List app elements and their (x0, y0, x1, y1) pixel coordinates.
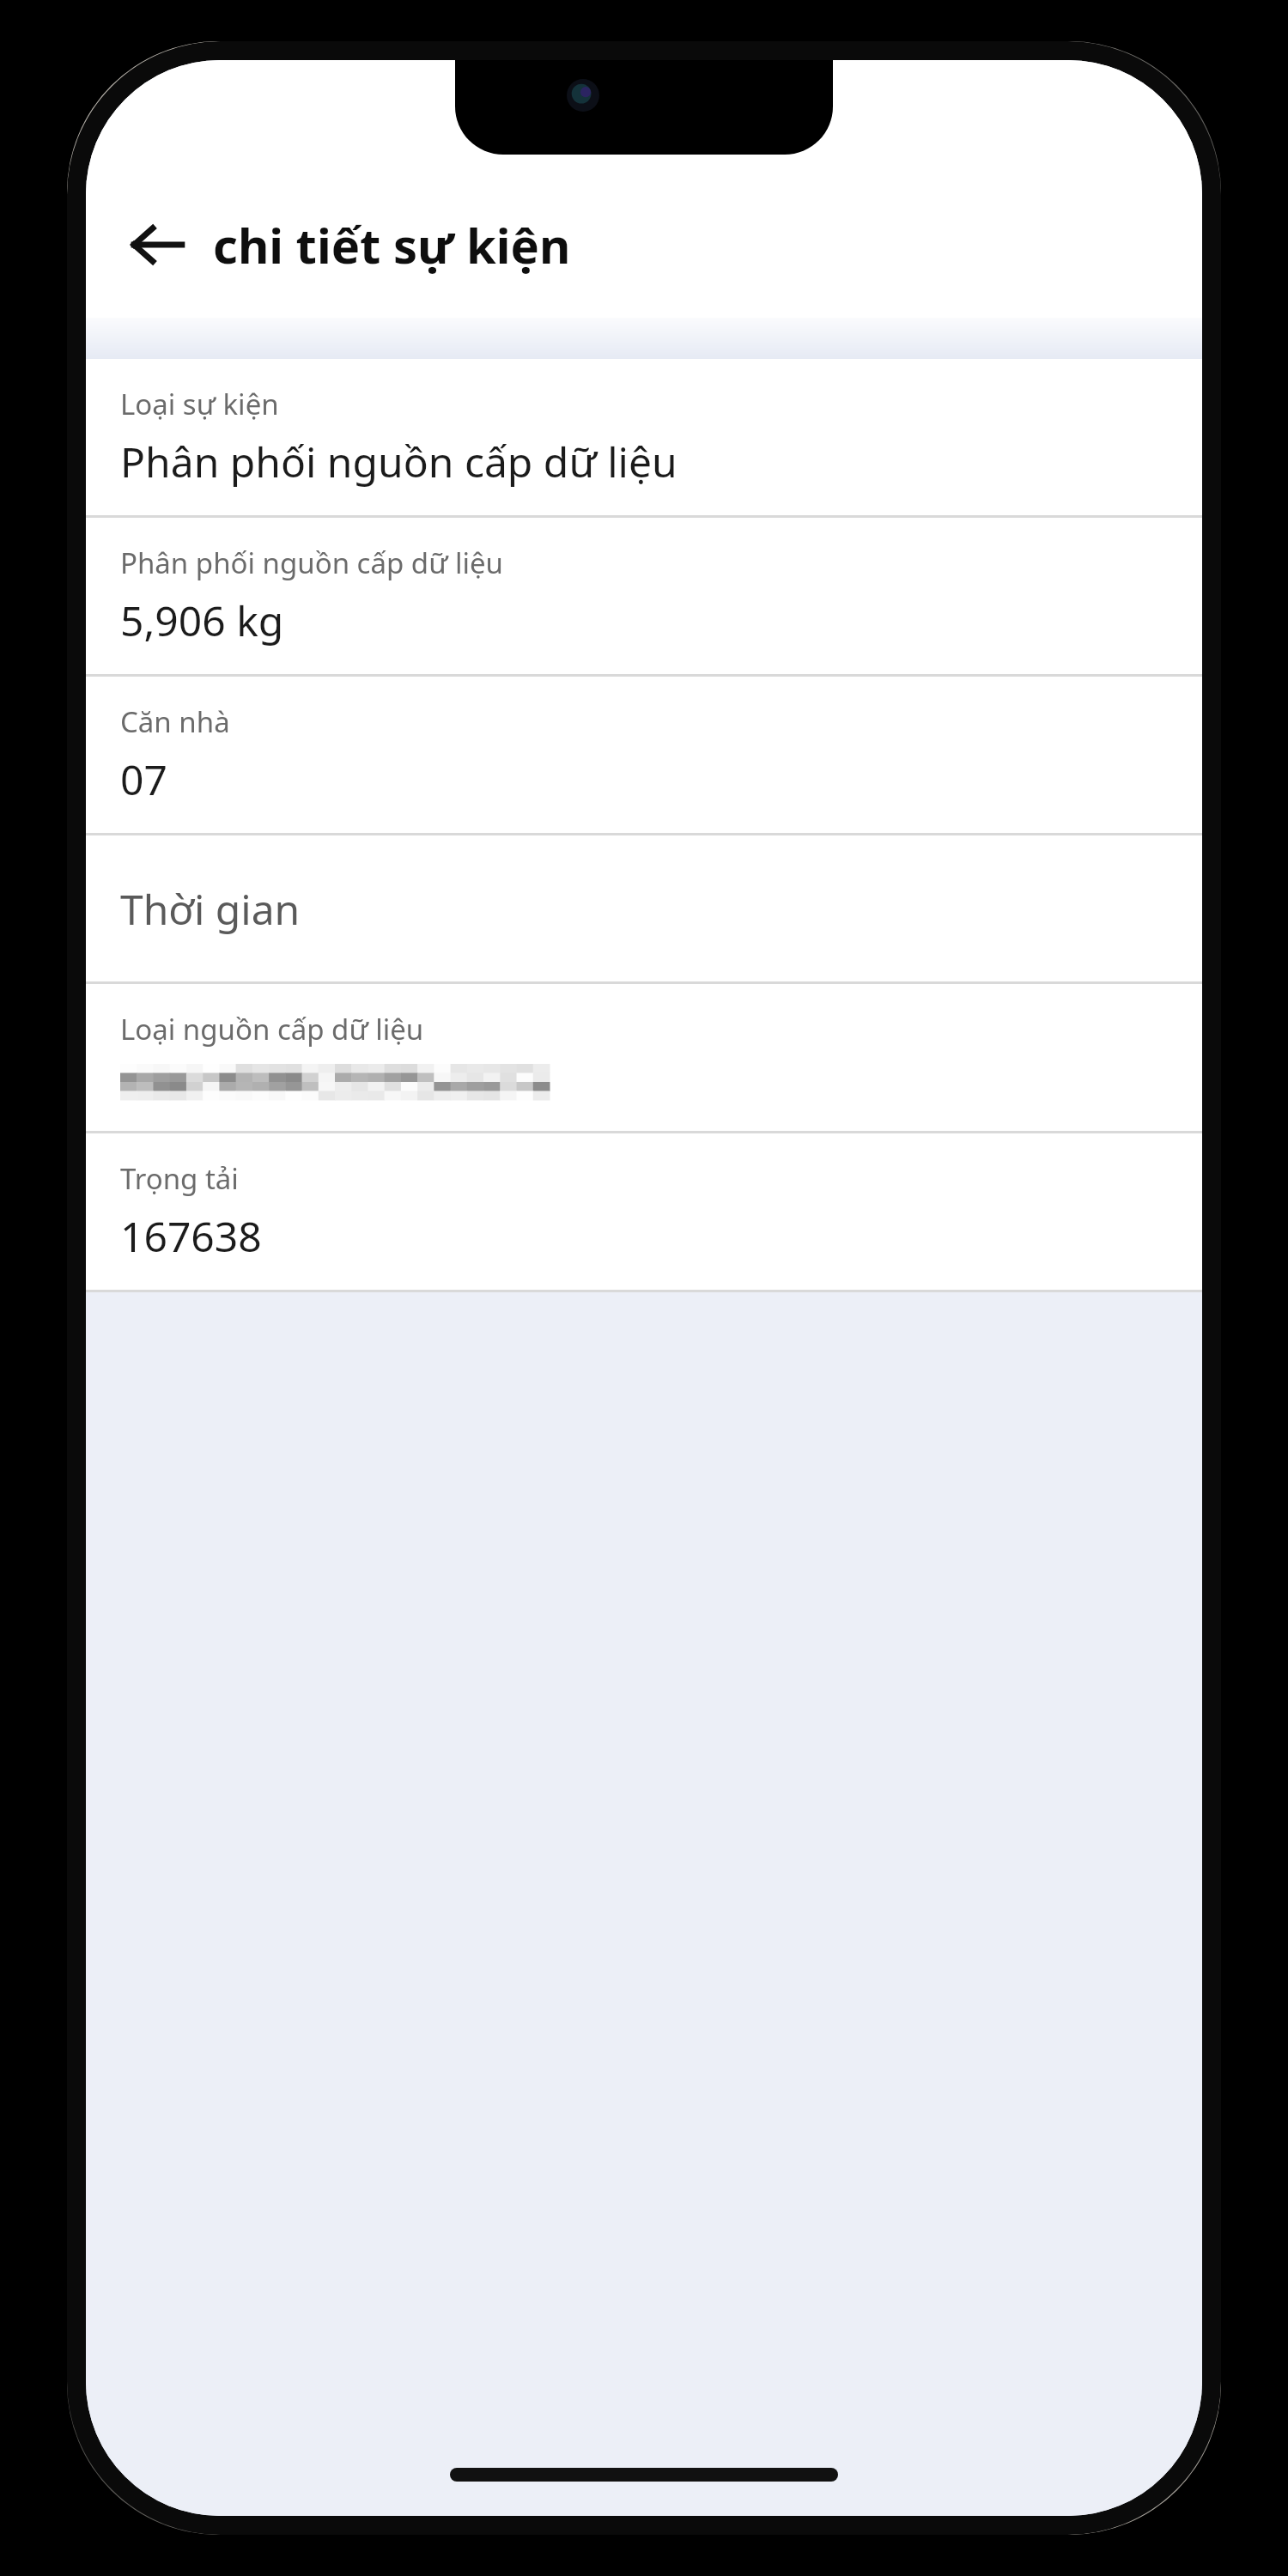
staticText: 167638 (120, 1208, 262, 1264)
staticText: Căn nhà (120, 702, 230, 741)
staticText: Trọng tải (120, 1159, 239, 1198)
staticText: Thời gian (120, 881, 301, 937)
staticText: Loại nguồn cấp dữ liệu (120, 1010, 424, 1048)
button[interactable]: Căn nhà (86, 677, 1202, 833)
staticText: Loại sự kiện (120, 385, 279, 423)
button[interactable]: Trọng tải (86, 1133, 1202, 1290)
button[interactable]: Back (110, 197, 204, 292)
button[interactable]: Phân phối nguồn cấp dữ liệu (86, 518, 1202, 674)
staticText: chi tiết sự kiện (213, 212, 571, 277)
staticText: Phân phối nguồn cấp dữ liệu (120, 434, 677, 489)
staticText: 5,906 kg (120, 592, 284, 648)
staticText: Phân phối nguồn cấp dữ liệu (120, 544, 503, 582)
staticText: 07 (120, 751, 167, 807)
button[interactable]: Thời gian (86, 835, 1202, 981)
button[interactable]: Loại nguồn cấp dữ liệu (86, 984, 1202, 1131)
button[interactable]: Loại sự kiện (86, 359, 1202, 515)
